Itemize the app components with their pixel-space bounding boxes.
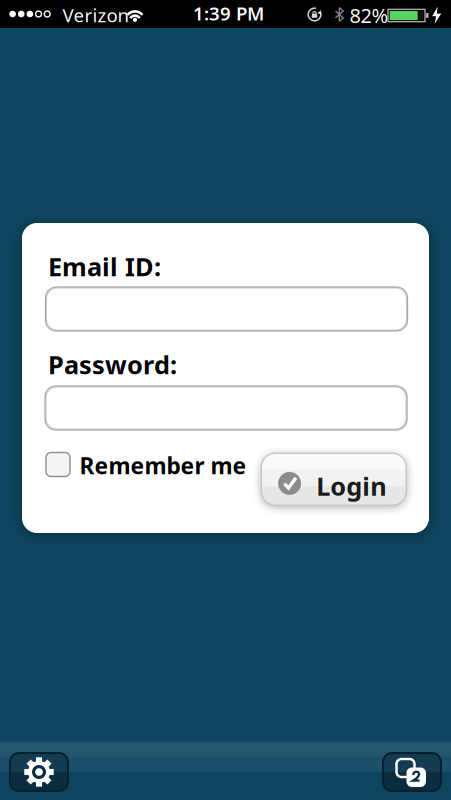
button[interactable]: Remember me <box>46 452 232 476</box>
staticText: Login <box>316 469 386 503</box>
staticText: Remember me <box>79 450 246 480</box>
button[interactable]: Login <box>261 453 406 505</box>
button[interactable]: Password <box>45 386 407 430</box>
staticText: Email ID: <box>48 249 161 283</box>
button[interactable]: Pages <box>383 753 441 791</box>
button[interactable]: Email ID <box>45 287 407 331</box>
staticText: Verizon <box>62 2 129 27</box>
staticText: 82% <box>349 2 388 28</box>
button[interactable]: Settings <box>10 753 68 791</box>
staticText: Password: <box>48 347 177 381</box>
staticText: 1:39 PM <box>193 1 264 26</box>
